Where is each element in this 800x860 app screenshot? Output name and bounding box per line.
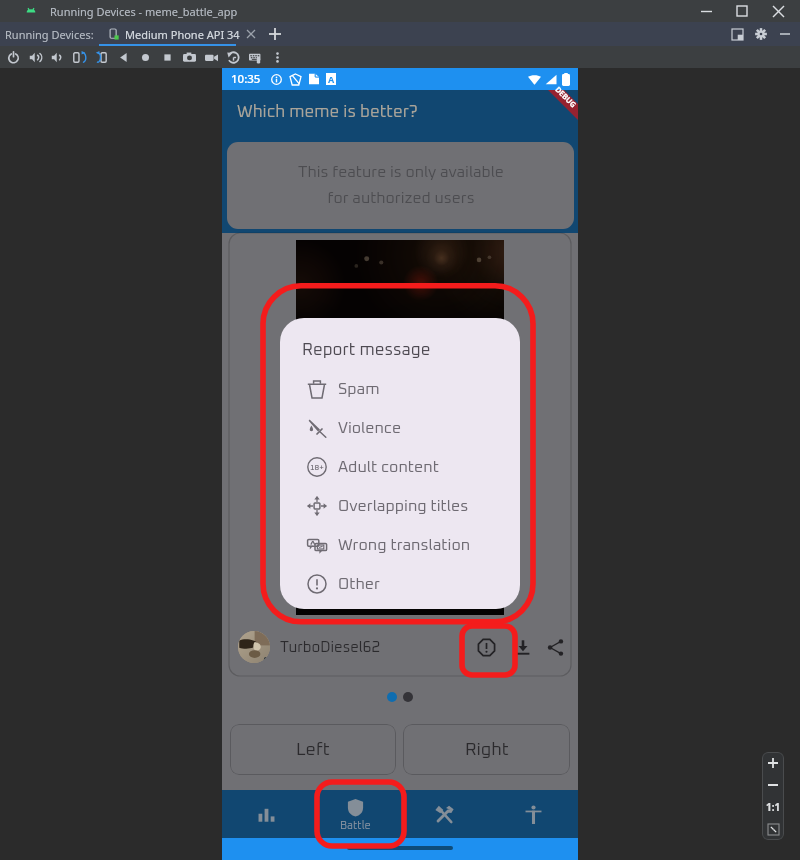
button[interactable]: Reset [222, 46, 244, 68]
button[interactable]: Report [469, 630, 503, 664]
button[interactable]: Wrong translation [280, 525, 520, 564]
staticText: This feature is only available for autho… [298, 165, 504, 206]
button[interactable]: Download [510, 634, 536, 660]
button[interactable]: Share [542, 634, 568, 660]
staticText: 1:1 [766, 800, 781, 814]
staticText: Running Devices: [5, 27, 94, 42]
staticText: DEBUG [553, 84, 579, 110]
staticText: Running Devices - meme_battle_app [50, 4, 238, 19]
button[interactable]: Maximize [724, 0, 760, 22]
staticText: Violence [338, 420, 402, 436]
button[interactable]: Fit to screen [762, 818, 784, 840]
button[interactable]: 1:1 [762, 796, 784, 818]
staticText: Spam [338, 381, 380, 397]
button[interactable]: Left [230, 724, 396, 775]
button[interactable]: Volume down [46, 46, 68, 68]
button[interactable]: Screenshot [178, 46, 200, 68]
staticText: Report message [302, 342, 431, 359]
button[interactable]: Tools [400, 790, 489, 838]
staticText: TurboDiesel62 [280, 640, 381, 655]
button[interactable]: Stats [222, 790, 311, 838]
staticText: Left [296, 741, 330, 759]
button[interactable]: Layout [725, 22, 749, 46]
button[interactable]: Accessibility [489, 790, 578, 838]
staticText: Other [338, 576, 380, 592]
button[interactable]: Other [280, 564, 520, 603]
button[interactable]: Power [2, 46, 24, 68]
button[interactable]: Settings [749, 22, 773, 46]
button[interactable]: Right [403, 724, 570, 775]
button[interactable]: 18+ [280, 447, 520, 486]
button[interactable]: Record [200, 46, 222, 68]
staticText: Right [465, 741, 509, 759]
button[interactable]: Volume up [24, 46, 46, 68]
button[interactable]: Add device [261, 22, 289, 46]
button[interactable]: Rotate left [68, 46, 90, 68]
button[interactable]: Overlapping titles [280, 486, 520, 525]
button[interactable]: Close [760, 0, 796, 22]
button[interactable]: Home [134, 46, 156, 68]
button[interactable]: Medium Phone API 34 [103, 22, 261, 46]
staticText: Medium Phone API 34 [125, 27, 240, 42]
staticText: A [328, 73, 335, 85]
staticText: Which meme is better? [237, 104, 418, 121]
button[interactable]: Back [112, 46, 134, 68]
button[interactable]: More [266, 46, 288, 68]
button[interactable]: Zoom in [762, 752, 784, 774]
staticText: 10:35 [231, 71, 261, 87]
staticText: Battle [340, 820, 371, 831]
button[interactable]: Rotate right [90, 46, 112, 68]
button[interactable]: Keyboard [244, 46, 266, 68]
button[interactable]: Minimize [688, 0, 724, 22]
button[interactable]: Zoom out [762, 774, 784, 796]
button[interactable]: Spam [280, 369, 520, 408]
button[interactable]: Battle [311, 790, 400, 838]
button[interactable]: Hide [773, 22, 797, 46]
staticText: Wrong translation [338, 537, 471, 553]
staticText: Overlapping titles [338, 498, 469, 514]
staticText: 18+ [310, 464, 324, 472]
button[interactable]: Overview [156, 46, 178, 68]
staticText: Adult content [338, 459, 439, 475]
button[interactable]: Violence [280, 408, 520, 447]
button[interactable]: This feature is only available for autho… [227, 142, 574, 229]
